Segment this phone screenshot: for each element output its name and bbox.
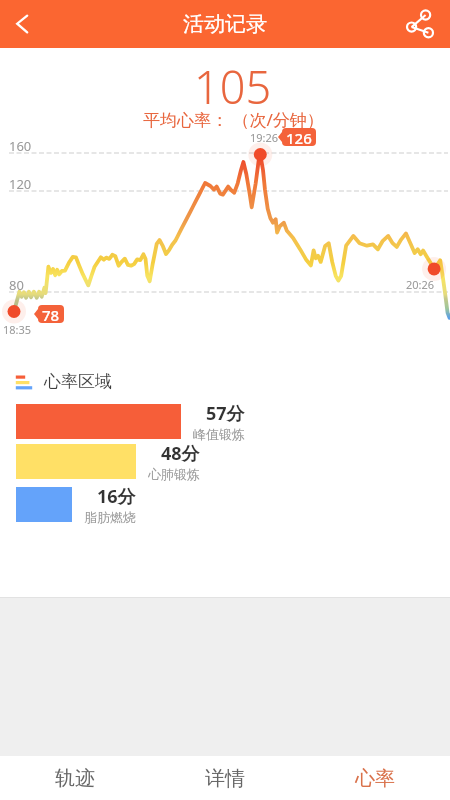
staticText: 峰值锻炼 — [193, 426, 245, 442]
staticText: 平均心率： （次/分钟） — [143, 108, 324, 131]
staticText: 16分 — [97, 484, 136, 509]
staticText: 脂肪燃烧 — [84, 509, 136, 525]
staticText: 80 — [9, 276, 24, 294]
staticText: 18:35 — [3, 322, 32, 337]
staticText: 126 — [286, 128, 312, 146]
staticText: 160 — [9, 137, 32, 155]
button[interactable]: 详情 — [150, 756, 300, 800]
staticText: 轨迹 — [55, 766, 95, 791]
staticText: 详情 — [205, 766, 245, 791]
staticText: 20:26 — [406, 277, 435, 292]
staticText: 48分 — [161, 441, 200, 466]
staticText: 心率区域 — [44, 371, 112, 392]
staticText: 心肺锻炼 — [148, 466, 200, 482]
staticText: 78 — [42, 305, 60, 323]
staticText: 活动记录 — [183, 11, 267, 37]
button[interactable]: 轨迹 — [0, 756, 150, 800]
button[interactable]: Share — [396, 0, 444, 48]
button[interactable]: 心率 — [300, 756, 450, 800]
staticText: 57分 — [206, 401, 245, 426]
button[interactable]: Back — [0, 2, 44, 46]
staticText: 心率 — [355, 766, 395, 791]
staticText: 120 — [9, 175, 32, 193]
staticText: 105 — [194, 56, 272, 117]
staticText: 19:26 — [250, 130, 279, 145]
